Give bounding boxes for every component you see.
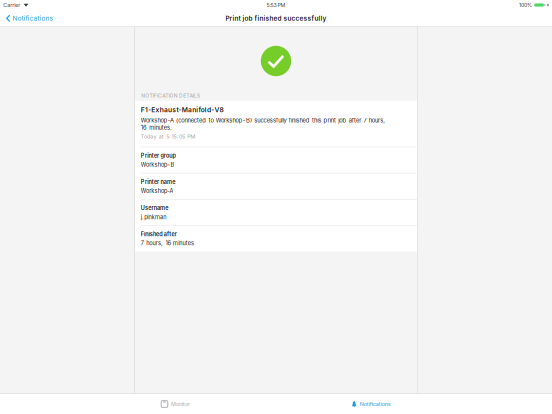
staticText: j.pinkman <box>141 214 166 220</box>
staticText: Print job finished successfully <box>225 14 326 22</box>
button[interactable]: Notifications <box>352 394 391 414</box>
staticText: NOTIFICATION DETAILS <box>141 93 200 99</box>
staticText: Username <box>141 205 168 211</box>
staticText: 5:53 PM <box>266 2 285 8</box>
staticText: Workshop-B <box>141 161 174 168</box>
staticText: Printer name <box>141 179 175 185</box>
staticText: 7 hours, 16 minutes <box>141 240 194 247</box>
staticText: 16 minutes. <box>141 124 172 131</box>
staticText: Finished after <box>141 231 177 238</box>
staticText: Notifications <box>360 401 391 407</box>
staticText: Today at 5:15:05 PM <box>141 133 195 140</box>
button[interactable]: Notifications <box>0 10 56 27</box>
staticText: Printer group <box>141 152 175 159</box>
staticText: Monitor <box>171 401 190 407</box>
button[interactable]: Monitor <box>161 394 190 414</box>
staticText: Workshop-A <box>141 187 173 194</box>
staticText: Notifications <box>12 14 52 22</box>
staticText: Workshop-A (connected to Workshop-B) suc… <box>141 117 385 124</box>
staticText: Carrier <box>3 2 20 8</box>
staticText: 100% <box>519 2 532 8</box>
staticText: F1-Exhaust-Manifold-V8 <box>141 106 224 114</box>
